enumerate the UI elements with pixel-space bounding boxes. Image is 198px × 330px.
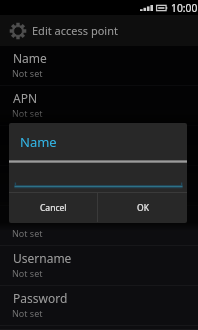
staticText: Edit access point xyxy=(32,23,118,38)
button[interactable]: Settings xyxy=(0,15,198,46)
staticText: APN xyxy=(13,90,38,106)
staticText: Not set xyxy=(12,67,43,79)
button[interactable]: Name xyxy=(0,46,198,86)
staticText: Password xyxy=(13,290,68,306)
button[interactable]: Password xyxy=(0,286,198,326)
staticText: Name xyxy=(13,50,47,66)
button[interactable]: Username xyxy=(0,246,198,286)
button[interactable]: Server xyxy=(0,206,198,246)
staticText: Username xyxy=(13,250,72,266)
staticText: Not set xyxy=(12,187,43,199)
button[interactable]: APN xyxy=(0,86,198,126)
button[interactable]: OK xyxy=(98,193,187,222)
staticText: OK xyxy=(137,202,149,214)
staticText: Name xyxy=(20,133,57,151)
staticText: Server xyxy=(13,210,50,226)
staticText: Proxy xyxy=(13,130,45,146)
button[interactable]: Proxy xyxy=(0,126,198,166)
button[interactable]: MMSC xyxy=(0,326,198,330)
staticText: Not set xyxy=(12,267,43,279)
button[interactable]: Port xyxy=(0,166,198,206)
staticText: Not set xyxy=(12,107,43,119)
other: Settings xyxy=(9,22,27,40)
staticText: Not set xyxy=(12,307,43,319)
staticText: 10:00 xyxy=(171,1,198,15)
staticText: Not set xyxy=(12,227,43,239)
button[interactable]: Cancel xyxy=(9,193,97,222)
staticText: Port xyxy=(13,170,37,186)
staticText: Cancel xyxy=(40,202,67,214)
